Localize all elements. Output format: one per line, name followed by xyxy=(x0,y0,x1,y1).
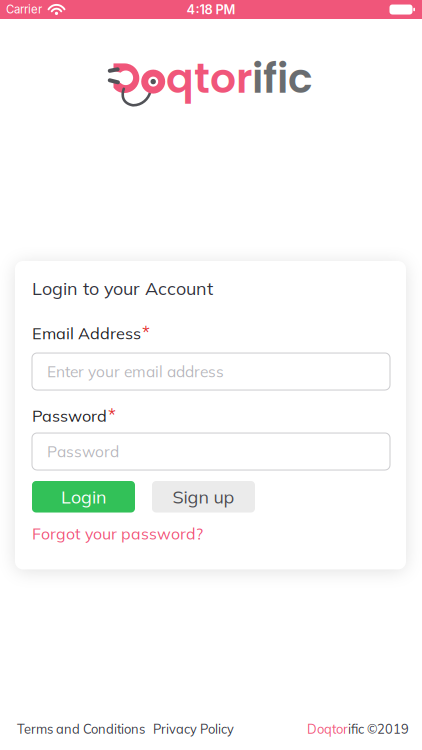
staticText: Login xyxy=(61,485,106,508)
staticText: ific ©2019 xyxy=(348,721,409,737)
staticText: Privacy Policy xyxy=(153,721,234,737)
staticText: Forgot your password? xyxy=(32,523,203,543)
button[interactable]: Privacy Policy xyxy=(153,721,234,737)
staticText: Doqtor xyxy=(111,50,252,107)
staticText: Password xyxy=(32,405,107,426)
staticText: Password xyxy=(47,442,119,461)
button[interactable]: Password xyxy=(32,433,390,470)
staticText: 4:18 PM xyxy=(186,2,235,17)
staticText: * xyxy=(142,321,150,343)
staticText: ific xyxy=(252,50,313,107)
staticText: Doqtor xyxy=(307,721,348,737)
staticText: Login to your Account xyxy=(32,277,213,299)
staticText: Carrier xyxy=(6,3,42,16)
button[interactable]: Terms and Conditions xyxy=(17,721,145,737)
staticText: Enter your email address xyxy=(47,362,224,381)
button[interactable]: Sign up xyxy=(152,481,255,512)
staticText: Sign up xyxy=(172,485,234,508)
button[interactable]: Login xyxy=(32,481,135,512)
staticText: Email Address xyxy=(32,323,141,343)
button[interactable]: Enter your email address xyxy=(32,353,390,390)
staticText: * xyxy=(108,404,116,426)
staticText: Terms and Conditions xyxy=(17,721,145,737)
button[interactable]: Forgot your password? xyxy=(32,523,203,543)
